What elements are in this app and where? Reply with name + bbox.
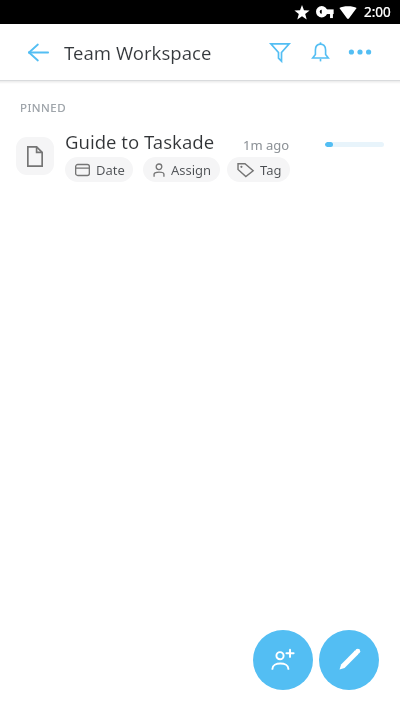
button[interactable]: Back <box>14 28 62 76</box>
button[interactable]: Guide to Taskade <box>16 124 384 182</box>
staticText: 1m ago <box>243 136 290 154</box>
staticText: Assign <box>171 161 212 179</box>
staticText: PINNED <box>20 100 67 116</box>
button[interactable]: Create <box>319 630 379 690</box>
button[interactable]: More options <box>340 32 380 72</box>
button[interactable]: Tag <box>227 157 290 182</box>
staticText: Tag <box>260 161 282 179</box>
staticText: Team Workspace <box>64 40 212 65</box>
button[interactable]: Filter <box>260 32 300 72</box>
button[interactable]: Add member <box>253 630 313 690</box>
button[interactable]: Assign <box>143 157 220 182</box>
staticText: Date <box>96 161 125 179</box>
staticText: 2:00 <box>364 3 391 21</box>
staticText: Guide to Taskade <box>65 129 215 154</box>
button[interactable]: Notifications <box>300 32 340 72</box>
button[interactable]: Date <box>65 157 133 182</box>
